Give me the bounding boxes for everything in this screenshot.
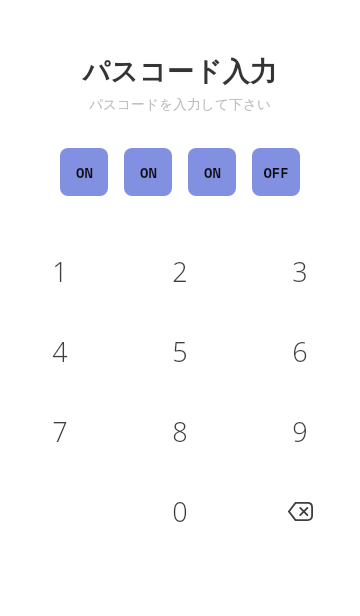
staticText: ON bbox=[204, 163, 221, 182]
button[interactable]: 9 bbox=[240, 391, 360, 471]
staticText: OFF bbox=[263, 163, 289, 182]
button[interactable]: 4 bbox=[0, 311, 120, 391]
staticText: 2 bbox=[172, 253, 188, 290]
button[interactable]: ON bbox=[124, 148, 172, 196]
staticText: 0 bbox=[172, 493, 188, 530]
staticText: パスコード入力 bbox=[0, 55, 360, 89]
staticText: 9 bbox=[292, 413, 308, 450]
button[interactable]: ON bbox=[188, 148, 236, 196]
button[interactable]: Backspace bbox=[240, 471, 360, 551]
button[interactable]: 1 bbox=[0, 231, 120, 311]
button[interactable]: OFF bbox=[252, 148, 300, 196]
button[interactable]: 2 bbox=[120, 231, 240, 311]
staticText: 3 bbox=[292, 253, 308, 290]
staticText: 1 bbox=[52, 253, 68, 290]
button[interactable]: 6 bbox=[240, 311, 360, 391]
staticText: パスコードを入力して下さい bbox=[0, 96, 360, 113]
button[interactable]: 8 bbox=[120, 391, 240, 471]
staticText: 5 bbox=[172, 333, 188, 370]
staticText: 7 bbox=[52, 413, 68, 450]
staticText: 4 bbox=[52, 333, 68, 370]
staticText: 6 bbox=[292, 333, 308, 370]
staticText: ON bbox=[140, 163, 157, 182]
button[interactable]: 0 bbox=[120, 471, 240, 551]
button[interactable]: 5 bbox=[120, 311, 240, 391]
staticText: 8 bbox=[172, 413, 188, 450]
button[interactable]: 7 bbox=[0, 391, 120, 471]
button[interactable]: 3 bbox=[240, 231, 360, 311]
button[interactable]: ON bbox=[60, 148, 108, 196]
staticText: ON bbox=[76, 163, 93, 182]
